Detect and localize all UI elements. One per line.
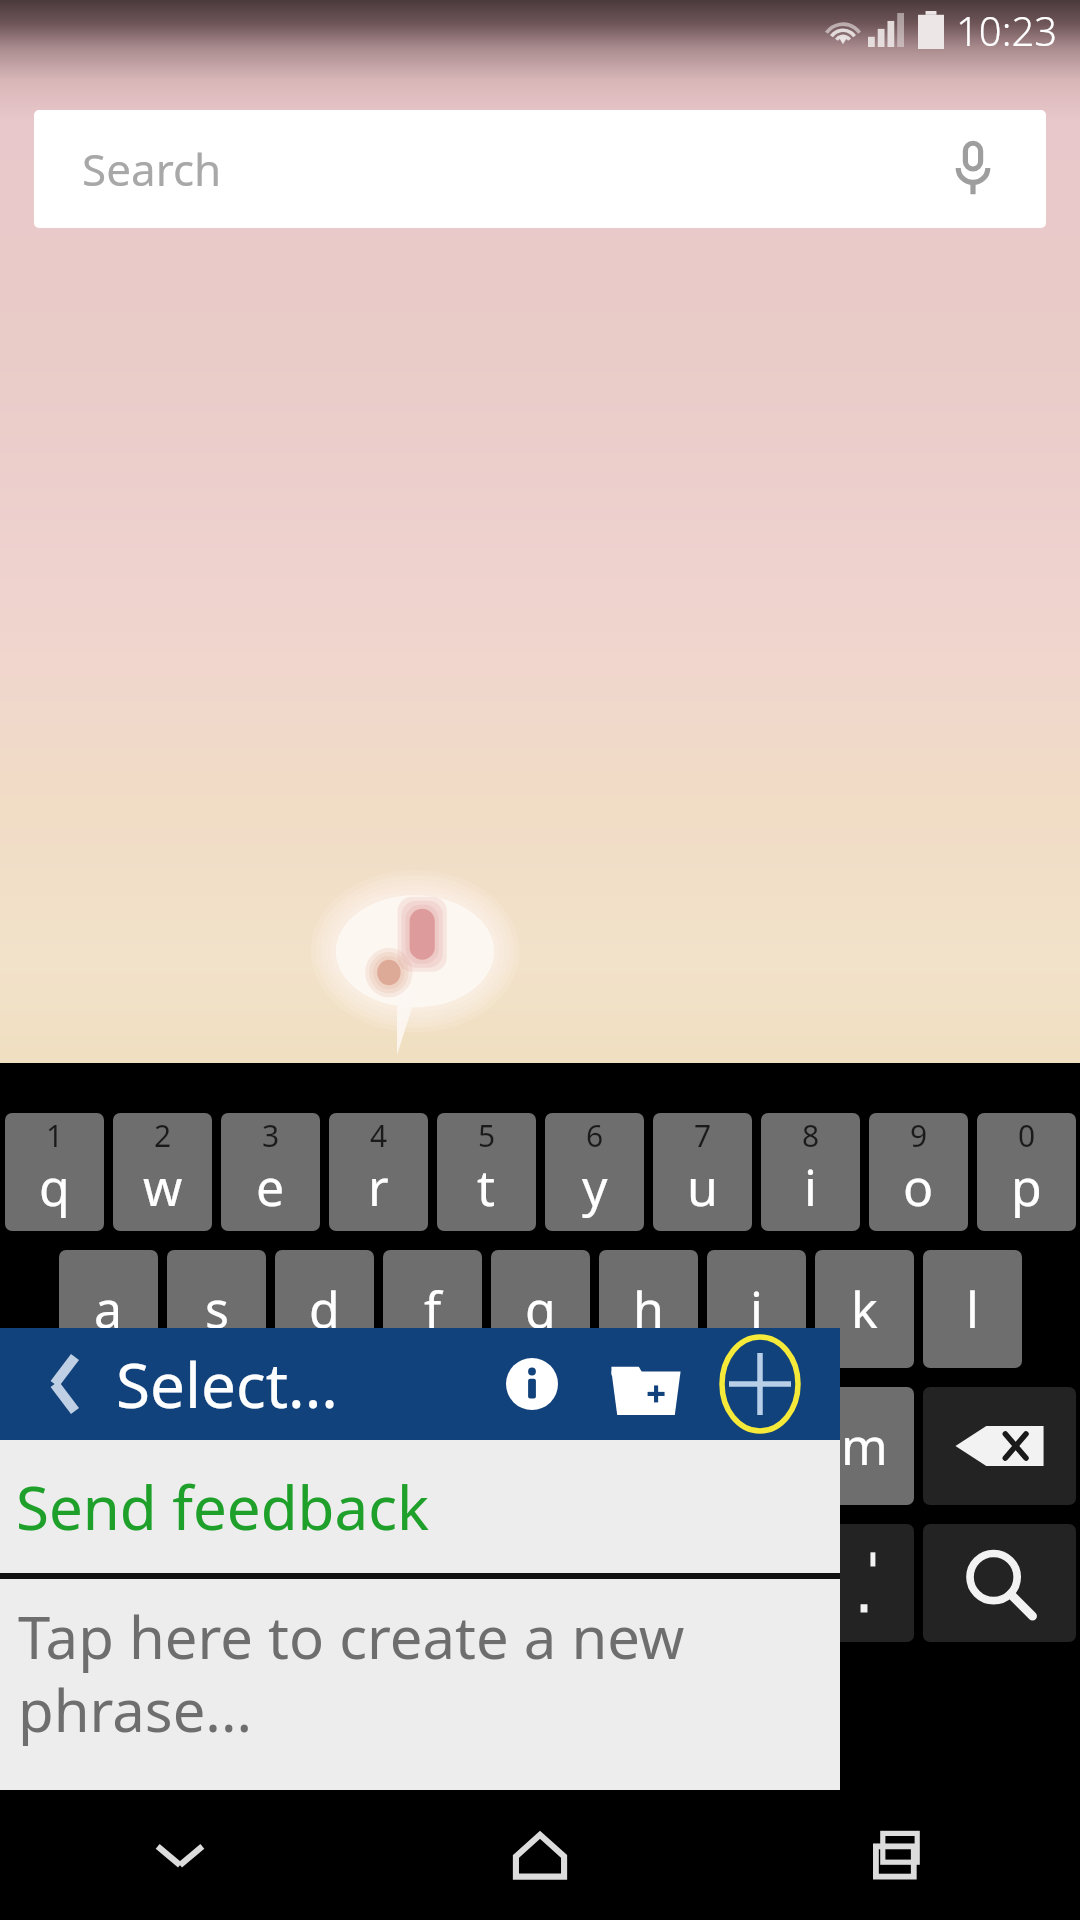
staticText: t — [477, 1153, 496, 1221]
button[interactable]: search — [923, 1524, 1076, 1642]
staticText: 2 — [154, 1115, 172, 1156]
staticText: g — [525, 1275, 556, 1343]
staticText: i — [804, 1153, 817, 1221]
button[interactable]: d — [275, 1250, 374, 1368]
button[interactable]: v — [491, 1387, 590, 1505]
button[interactable]: 4 — [329, 1113, 428, 1231]
staticText: 1 — [46, 1115, 64, 1156]
button[interactable]: 5 — [437, 1113, 536, 1231]
staticText: 10:23 — [956, 3, 1058, 57]
staticText: c — [421, 1412, 445, 1480]
button[interactable]: 8 — [761, 1113, 860, 1231]
button[interactable]: Home — [360, 1790, 720, 1920]
button[interactable]: f — [383, 1250, 482, 1368]
staticText: 4 — [370, 1115, 388, 1156]
staticText: q — [39, 1153, 70, 1221]
staticText: e — [256, 1153, 285, 1221]
button[interactable]: Add — [710, 1334, 810, 1434]
staticText: v — [528, 1412, 554, 1480]
button[interactable]: period — [815, 1524, 914, 1642]
staticText: 8 — [802, 1115, 820, 1156]
button[interactable]: New folder — [600, 1338, 692, 1430]
button[interactable]: 0 — [977, 1113, 1076, 1231]
staticText: o — [903, 1153, 934, 1221]
staticText: u — [687, 1153, 718, 1221]
staticText: Tap here to create a new phrase... — [18, 1597, 820, 1749]
staticText: 5 — [478, 1115, 496, 1156]
button[interactable]: m — [815, 1387, 914, 1505]
button[interactable]: k — [815, 1250, 914, 1368]
staticText: h — [633, 1275, 664, 1343]
button[interactable]: Recent apps — [720, 1790, 1080, 1920]
staticText: Select... — [116, 1342, 338, 1426]
staticText: 3 — [262, 1115, 280, 1156]
staticText: j — [750, 1275, 763, 1343]
button[interactable]: 6 — [545, 1113, 644, 1231]
button[interactable]: 9 — [869, 1113, 968, 1231]
staticText: Send feedback — [16, 1466, 429, 1548]
button[interactable]: ?123 — [5, 1524, 158, 1642]
button[interactable]: b — [599, 1387, 698, 1505]
staticText: y — [582, 1153, 608, 1221]
staticText: ?123 — [45, 1560, 119, 1606]
staticText: a — [94, 1275, 123, 1343]
staticText: d — [309, 1275, 340, 1343]
button[interactable]: Send feedback — [0, 1440, 840, 1573]
staticText: x — [311, 1412, 338, 1480]
staticText: w — [143, 1153, 183, 1221]
button[interactable]: g — [491, 1250, 590, 1368]
button[interactable]: Voice search — [930, 126, 1016, 212]
button[interactable]: Hide keyboard — [0, 1790, 360, 1920]
button[interactable]: z — [167, 1387, 266, 1505]
button[interactable]: Information — [490, 1342, 574, 1426]
staticText: p — [1011, 1153, 1042, 1221]
button[interactable]: space — [275, 1524, 806, 1642]
staticText: l — [966, 1275, 979, 1343]
staticText: 0 — [1018, 1115, 1036, 1156]
button[interactable]: 7 — [653, 1113, 752, 1231]
button[interactable]: Back — [38, 1356, 94, 1412]
button[interactable]: 2 — [113, 1113, 212, 1231]
staticText: s — [205, 1275, 229, 1343]
staticText: b — [633, 1412, 664, 1480]
button[interactable]: x — [275, 1387, 374, 1505]
staticText: r — [368, 1153, 389, 1221]
staticText: Search — [82, 139, 222, 199]
button[interactable]: 3 — [221, 1113, 320, 1231]
button[interactable]: s — [167, 1250, 266, 1368]
staticText: f — [424, 1275, 442, 1343]
button[interactable]: shift — [5, 1387, 158, 1505]
staticText: z — [205, 1412, 229, 1480]
button[interactable]: c — [383, 1387, 482, 1505]
staticText: 6 — [586, 1115, 604, 1156]
button[interactable]: emoji — [167, 1524, 266, 1642]
button[interactable]: Select... — [116, 1342, 338, 1426]
staticText: 9 — [910, 1115, 928, 1156]
staticText: k — [851, 1275, 878, 1343]
staticText: n — [741, 1412, 772, 1480]
staticText: m — [841, 1412, 888, 1480]
button[interactable]: bksp — [923, 1387, 1076, 1505]
button[interactable]: Tap here to create a new phrase... — [0, 1579, 840, 1789]
button[interactable]: n — [707, 1387, 806, 1505]
button[interactable]: h — [599, 1250, 698, 1368]
button[interactable]: 1 — [5, 1113, 104, 1231]
button[interactable]: l — [923, 1250, 1022, 1368]
button[interactable]: Search — [34, 110, 1046, 228]
staticText: 7 — [694, 1115, 712, 1156]
button[interactable]: j — [707, 1250, 806, 1368]
button[interactable]: a — [59, 1250, 158, 1368]
